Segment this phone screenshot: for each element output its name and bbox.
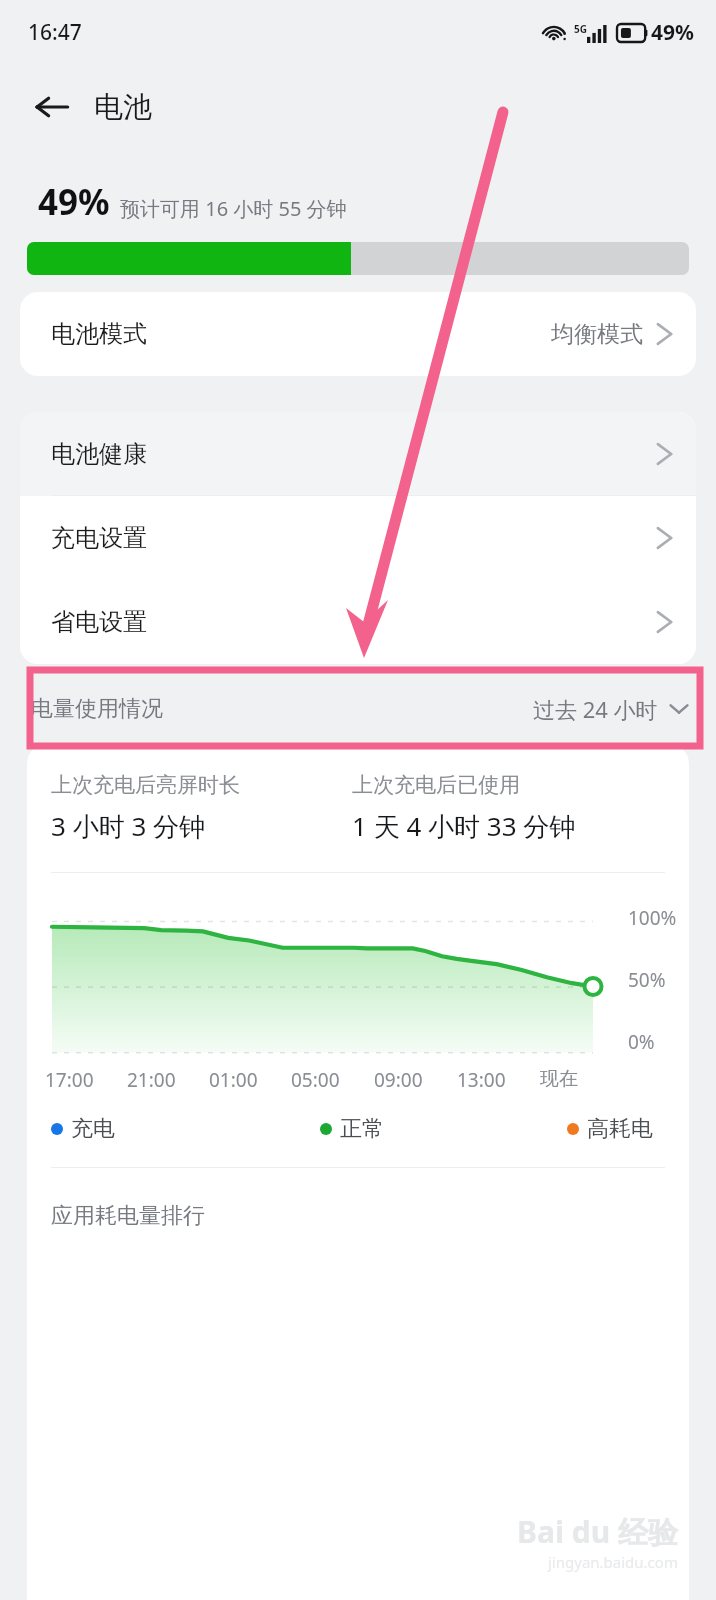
staticText: 21:00: [127, 1067, 209, 1093]
staticText: 05:00: [291, 1067, 374, 1093]
staticText: 充电: [71, 1115, 115, 1143]
staticText: 正常: [340, 1115, 384, 1143]
staticText: 预计可用 16 小时 55 分钟: [120, 195, 347, 222]
staticText: 现在: [540, 1067, 623, 1091]
staticText: jingyan.baidu.com: [548, 1552, 678, 1572]
staticText: 49%: [38, 178, 110, 226]
staticText: 50%: [628, 967, 666, 993]
staticText: 0%: [628, 1029, 655, 1055]
button[interactable]: 过去 24 小时: [533, 694, 690, 724]
staticText: 高耗电: [587, 1115, 653, 1143]
staticText: 17:00: [45, 1067, 127, 1093]
staticText: 5G: [574, 22, 587, 36]
staticText: 09:00: [374, 1067, 457, 1093]
staticText: 16:47: [28, 18, 82, 47]
button[interactable]: 充电设置: [20, 496, 696, 580]
button[interactable]: 省电设置: [20, 580, 696, 664]
button[interactable]: 应用耗电量排行: [27, 1202, 689, 1230]
staticText: 电池: [94, 89, 152, 126]
staticText: 电量使用情况: [31, 695, 163, 723]
staticText: 上次充电后已使用: [352, 772, 520, 798]
staticText: 电池模式: [51, 319, 147, 349]
staticText: 01:00: [209, 1067, 291, 1093]
staticText: 电池健康: [51, 439, 147, 469]
staticText: 100%: [628, 905, 677, 931]
button[interactable]: Back: [24, 79, 80, 135]
staticText: 49%: [651, 18, 694, 47]
staticText: 充电设置: [51, 523, 147, 553]
staticText: 1 天 4 小时 33 分钟: [352, 808, 576, 844]
staticText: 3 小时 3 分钟: [51, 808, 206, 844]
staticText: 省电设置: [51, 607, 147, 637]
button[interactable]: 电池模式: [20, 292, 696, 376]
staticText: 13:00: [457, 1067, 540, 1093]
staticText: 应用耗电量排行: [51, 1202, 205, 1230]
staticText: 均衡模式: [551, 320, 643, 349]
button[interactable]: 电池健康: [20, 412, 696, 496]
staticText: 上次充电后亮屏时长: [51, 772, 240, 798]
staticText: Bai du 经验: [517, 1511, 678, 1552]
staticText: 过去 24 小时: [533, 694, 658, 724]
